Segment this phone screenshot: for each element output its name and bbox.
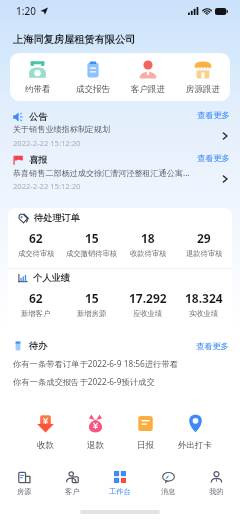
staticText: 工作台 <box>109 487 131 496</box>
button[interactable]: 收款 <box>20 400 70 464</box>
staticText: 房源 <box>17 487 32 496</box>
button[interactable]: 约带看 <box>10 53 65 101</box>
staticText: 成交报告 <box>76 84 110 95</box>
button[interactable]: 客户跟进 <box>120 53 175 101</box>
staticText: 62 <box>29 290 43 306</box>
button[interactable]: 消息 <box>144 464 192 502</box>
staticText: 29 <box>197 230 211 246</box>
staticText: 个人业绩 <box>33 272 70 284</box>
staticText: 应收业绩 <box>133 309 163 318</box>
staticText: 15 <box>85 230 99 246</box>
staticText: 查看更多 <box>196 341 229 351</box>
staticText: 15 <box>85 290 99 306</box>
staticText: 收款 <box>37 440 54 451</box>
staticText: 你有一条成交报告于2022-6-9预计成交 <box>13 376 155 387</box>
staticText: 2022-2-22 15:12:20 <box>13 138 81 148</box>
button[interactable]: 退款 <box>70 400 120 464</box>
staticText: 待办 <box>29 340 48 352</box>
staticText: 成交待审核 <box>18 249 55 258</box>
button[interactable]: 18 <box>120 230 176 258</box>
staticText: 客户跟进 <box>131 84 165 95</box>
staticText: 外出打卡 <box>178 440 212 451</box>
staticText: 客户 <box>65 487 80 496</box>
button[interactable]: 公告 <box>0 110 240 152</box>
staticText: 我的 <box>209 487 224 496</box>
staticText: 房源跟进 <box>186 84 220 95</box>
staticText: 62 <box>29 230 43 246</box>
button[interactable]: 我的 <box>192 464 240 502</box>
staticText: 日报 <box>137 440 154 451</box>
button[interactable]: 62 <box>8 290 64 318</box>
button[interactable]: 工作台 <box>96 464 144 502</box>
button[interactable]: 成交报告 <box>65 53 120 101</box>
button[interactable]: 62 <box>8 230 64 258</box>
staticText: 上海同复房屋租赁有限公司 <box>13 33 136 46</box>
button[interactable]: 房源跟进 <box>175 53 230 101</box>
staticText: 实收业绩 <box>189 309 219 318</box>
button[interactable]: 17.292 <box>120 290 176 318</box>
staticText: 喜报 <box>29 154 48 166</box>
button[interactable]: 房源 <box>0 464 48 502</box>
button[interactable]: 29 <box>176 230 232 258</box>
button[interactable]: 喜报 <box>0 153 240 195</box>
staticText: 收款待审核 <box>130 249 167 258</box>
staticText: 关于销售业绩指标制定规划 <box>13 124 195 134</box>
staticText: 17.292 <box>129 290 167 306</box>
staticText: 公告 <box>29 111 48 123</box>
staticText: 待处理订单 <box>34 212 80 224</box>
staticText: 18.324 <box>185 290 223 306</box>
staticText: 查看更多 <box>197 153 230 163</box>
staticText: 成交撤销待审核 <box>66 249 118 258</box>
button[interactable]: 18.324 <box>176 290 232 318</box>
button[interactable]: 15 <box>64 290 120 318</box>
staticText: 1:20 <box>16 4 36 18</box>
staticText: 新增客户 <box>21 309 51 318</box>
staticText: 退款待审核 <box>186 249 223 258</box>
button[interactable]: 外出打卡 <box>170 400 220 464</box>
button[interactable]: 客户 <box>48 464 96 502</box>
staticText: 新增房源 <box>77 309 107 318</box>
staticText: 退款 <box>87 440 104 451</box>
staticText: 消息 <box>161 487 176 496</box>
button[interactable]: 15 <box>64 230 120 258</box>
button[interactable]: 日报 <box>120 400 170 464</box>
staticText: 2022-2-22 15:12:20 <box>13 181 81 191</box>
staticText: 18 <box>141 230 155 246</box>
staticText: 你有一条带看订单于2022-6-9 18:56进行带看 <box>13 358 179 369</box>
button[interactable]: 待办 <box>0 338 240 394</box>
staticText: 约带看 <box>25 84 51 95</box>
staticText: 查看更多 <box>197 110 230 120</box>
staticText: 恭喜销售二部杨过成交徐汇漕河泾整租汇通公寓... <box>13 167 195 178</box>
